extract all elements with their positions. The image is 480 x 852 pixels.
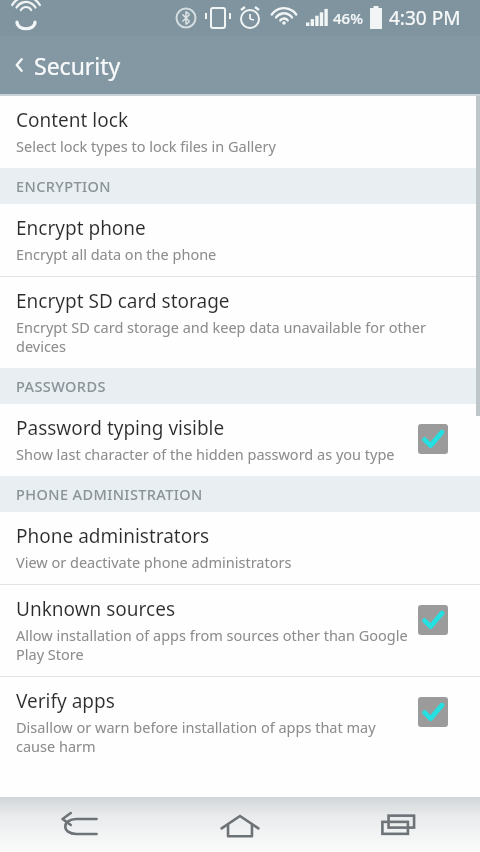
button[interactable]: Encrypt phone [0, 204, 480, 276]
button[interactable]: Verify apps [0, 677, 480, 768]
staticText: Verify apps [16, 688, 115, 714]
button[interactable]: Back to Security [0, 36, 480, 94]
staticText: PASSWORDS [16, 376, 106, 396]
staticText: Show last character of the hidden passwo… [16, 444, 395, 464]
staticText: View or deactivate phone administrators [16, 552, 292, 572]
staticText: Phone administrators [16, 523, 210, 549]
button[interactable]: Phone administrators [0, 512, 480, 584]
button[interactable]: Home [160, 797, 320, 852]
button[interactable]: Toggle checkbox [418, 424, 448, 454]
staticText: Content lock [16, 107, 129, 133]
staticText: Encrypt SD card storage [16, 288, 230, 314]
button[interactable]: Toggle checkbox [418, 605, 448, 635]
button[interactable]: Back [0, 797, 160, 852]
button[interactable]: Recent apps [320, 797, 480, 852]
staticText: Encrypt SD card storage and keep data un… [16, 317, 468, 356]
staticText: Encrypt all data on the phone [16, 244, 217, 264]
staticText: Encrypt phone [16, 215, 146, 241]
staticText: 46% [333, 8, 363, 28]
staticText: Security [34, 50, 121, 81]
staticText: 4:30 PM [389, 5, 461, 31]
staticText: Password typing visible [16, 415, 225, 441]
staticText: Unknown sources [16, 596, 175, 622]
button[interactable]: Password typing visible [0, 404, 480, 476]
button[interactable]: Encrypt SD card storage [0, 277, 480, 368]
button[interactable]: Toggle checkbox [418, 697, 448, 727]
staticText: Disallow or warn before installation of … [16, 717, 410, 756]
staticText: PHONE ADMINISTRATION [16, 484, 203, 504]
staticText: Allow installation of apps from sources … [16, 625, 410, 664]
button[interactable]: Unknown sources [0, 585, 480, 676]
staticText: ENCRYPTION [16, 176, 111, 196]
staticText: Select lock types to lock files in Galle… [16, 136, 276, 156]
button[interactable]: Content lock [0, 96, 480, 168]
